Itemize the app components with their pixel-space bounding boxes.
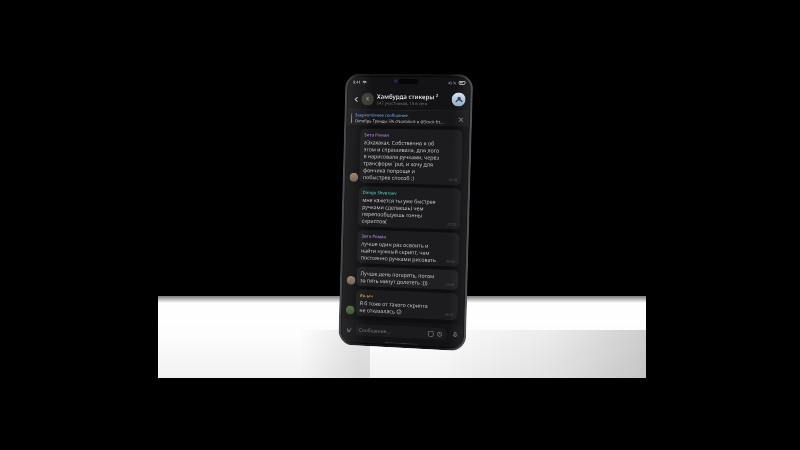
staticText: я нарисовала ручками, через [363,152,439,161]
staticText: Х [366,96,369,103]
button[interactable]: Stickers [427,330,434,337]
button[interactable]: Profile [451,92,466,107]
staticText: 9:41 [353,80,361,85]
staticText: ручками сделаешь) чем [362,203,424,211]
staticText: 09:15 [445,312,454,317]
button[interactable]: Зита Роман [346,229,463,267]
button[interactable]: Закреплённое сообщение [347,110,469,127]
staticText: Октябрь Тренды 5% cNonblock и @Stock frt… [355,118,444,125]
staticText: Зита Роман [364,131,389,138]
staticText: Лучше день потерять, потом [360,269,435,279]
button[interactable]: Chat avatar [361,93,374,106]
button[interactable]: Зита Роман [348,128,466,185]
button[interactable]: Record voice message [449,328,460,340]
staticText: за пять минут долететь :))) [360,276,428,286]
button[interactable]: Attach file [344,324,354,334]
staticText: 12:18 [448,177,457,182]
button[interactable]: Back [351,94,360,103]
button[interactable]: Ян-ыч [345,288,461,321]
staticText: найти нужный скрипт, чем [361,246,430,256]
button[interactable]: Сообщение... [355,324,447,340]
staticText: Dimgo Shvетаev [362,189,397,196]
staticText: Зита Роман [361,233,387,239]
staticText: трансформ `рut, и хочу для [363,159,434,168]
staticText: перепообщуешь тонны [362,210,423,218]
staticText: Я б тоже от такого скрипта [359,299,428,309]
staticText: 23:02 [445,282,454,287]
staticText: этом и спрашивала, для лого [364,145,439,154]
staticText: Закреплённое сообщение [355,112,409,119]
staticText: Сообщение... [359,327,391,335]
button[interactable]: Dimgo Shvетаev [347,186,464,230]
staticText: постоянно ручками рисовать [361,253,436,263]
staticText: аЭхахахах. Собственно я об [364,138,435,146]
button[interactable]: Dismiss pinned message [457,116,465,124]
button[interactable]: Лучше день потерять, потом [346,266,462,290]
button[interactable]: Хамбурда стикеры ² [377,92,450,107]
staticText: 547 участников, 13 в сети [377,101,428,107]
staticText: 09:42 [446,258,455,264]
staticText: не отказалась 😊 [359,306,402,315]
staticText: фончика попроще и [363,166,415,174]
staticText: 45 % [448,80,457,85]
button[interactable]: Schedule message [436,331,443,338]
staticText: лучше один раз освоить и [361,239,429,249]
staticText: скриптов( [362,217,387,224]
staticText: мне кажется ты уже быстрее [362,196,436,205]
staticText: 22:29 [447,221,456,227]
staticText: Ян-ыч [360,292,373,299]
staticText: Хамбурда стикеры ² [377,92,439,100]
staticText: побыстрее способ :) [363,173,415,181]
